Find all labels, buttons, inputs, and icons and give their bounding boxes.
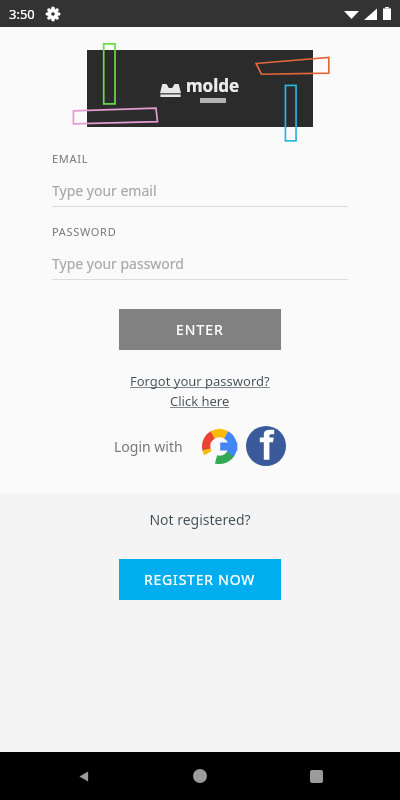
staticText: PASSWORD <box>52 224 117 239</box>
staticText: REGISTER NOW <box>144 570 256 589</box>
staticText: Login with <box>114 437 183 456</box>
button[interactable]: Home <box>184 760 216 792</box>
staticText: molde <box>186 74 240 97</box>
button[interactable]: Login with Facebook <box>246 426 286 466</box>
staticText: Forgot your password? <box>130 372 270 390</box>
button[interactable]: Login with Google <box>200 427 238 465</box>
button[interactable]: Recent apps <box>300 760 332 792</box>
staticText: Not registered? <box>0 510 400 529</box>
staticText: Type your email <box>52 181 157 200</box>
staticText: ENTER <box>176 320 224 339</box>
staticText: Click here <box>170 392 230 410</box>
staticText: EMAIL <box>52 151 89 166</box>
button[interactable]: Type your password <box>52 251 348 275</box>
staticText: Type your password <box>52 254 184 273</box>
button[interactable]: ENTER <box>119 309 281 350</box>
button[interactable]: REGISTER NOW <box>119 559 281 600</box>
button[interactable]: Type your email <box>52 178 348 202</box>
staticText: 3:50 <box>9 5 35 23</box>
button[interactable]: Back <box>68 760 100 792</box>
button[interactable]: Forgot your password? <box>0 372 400 410</box>
